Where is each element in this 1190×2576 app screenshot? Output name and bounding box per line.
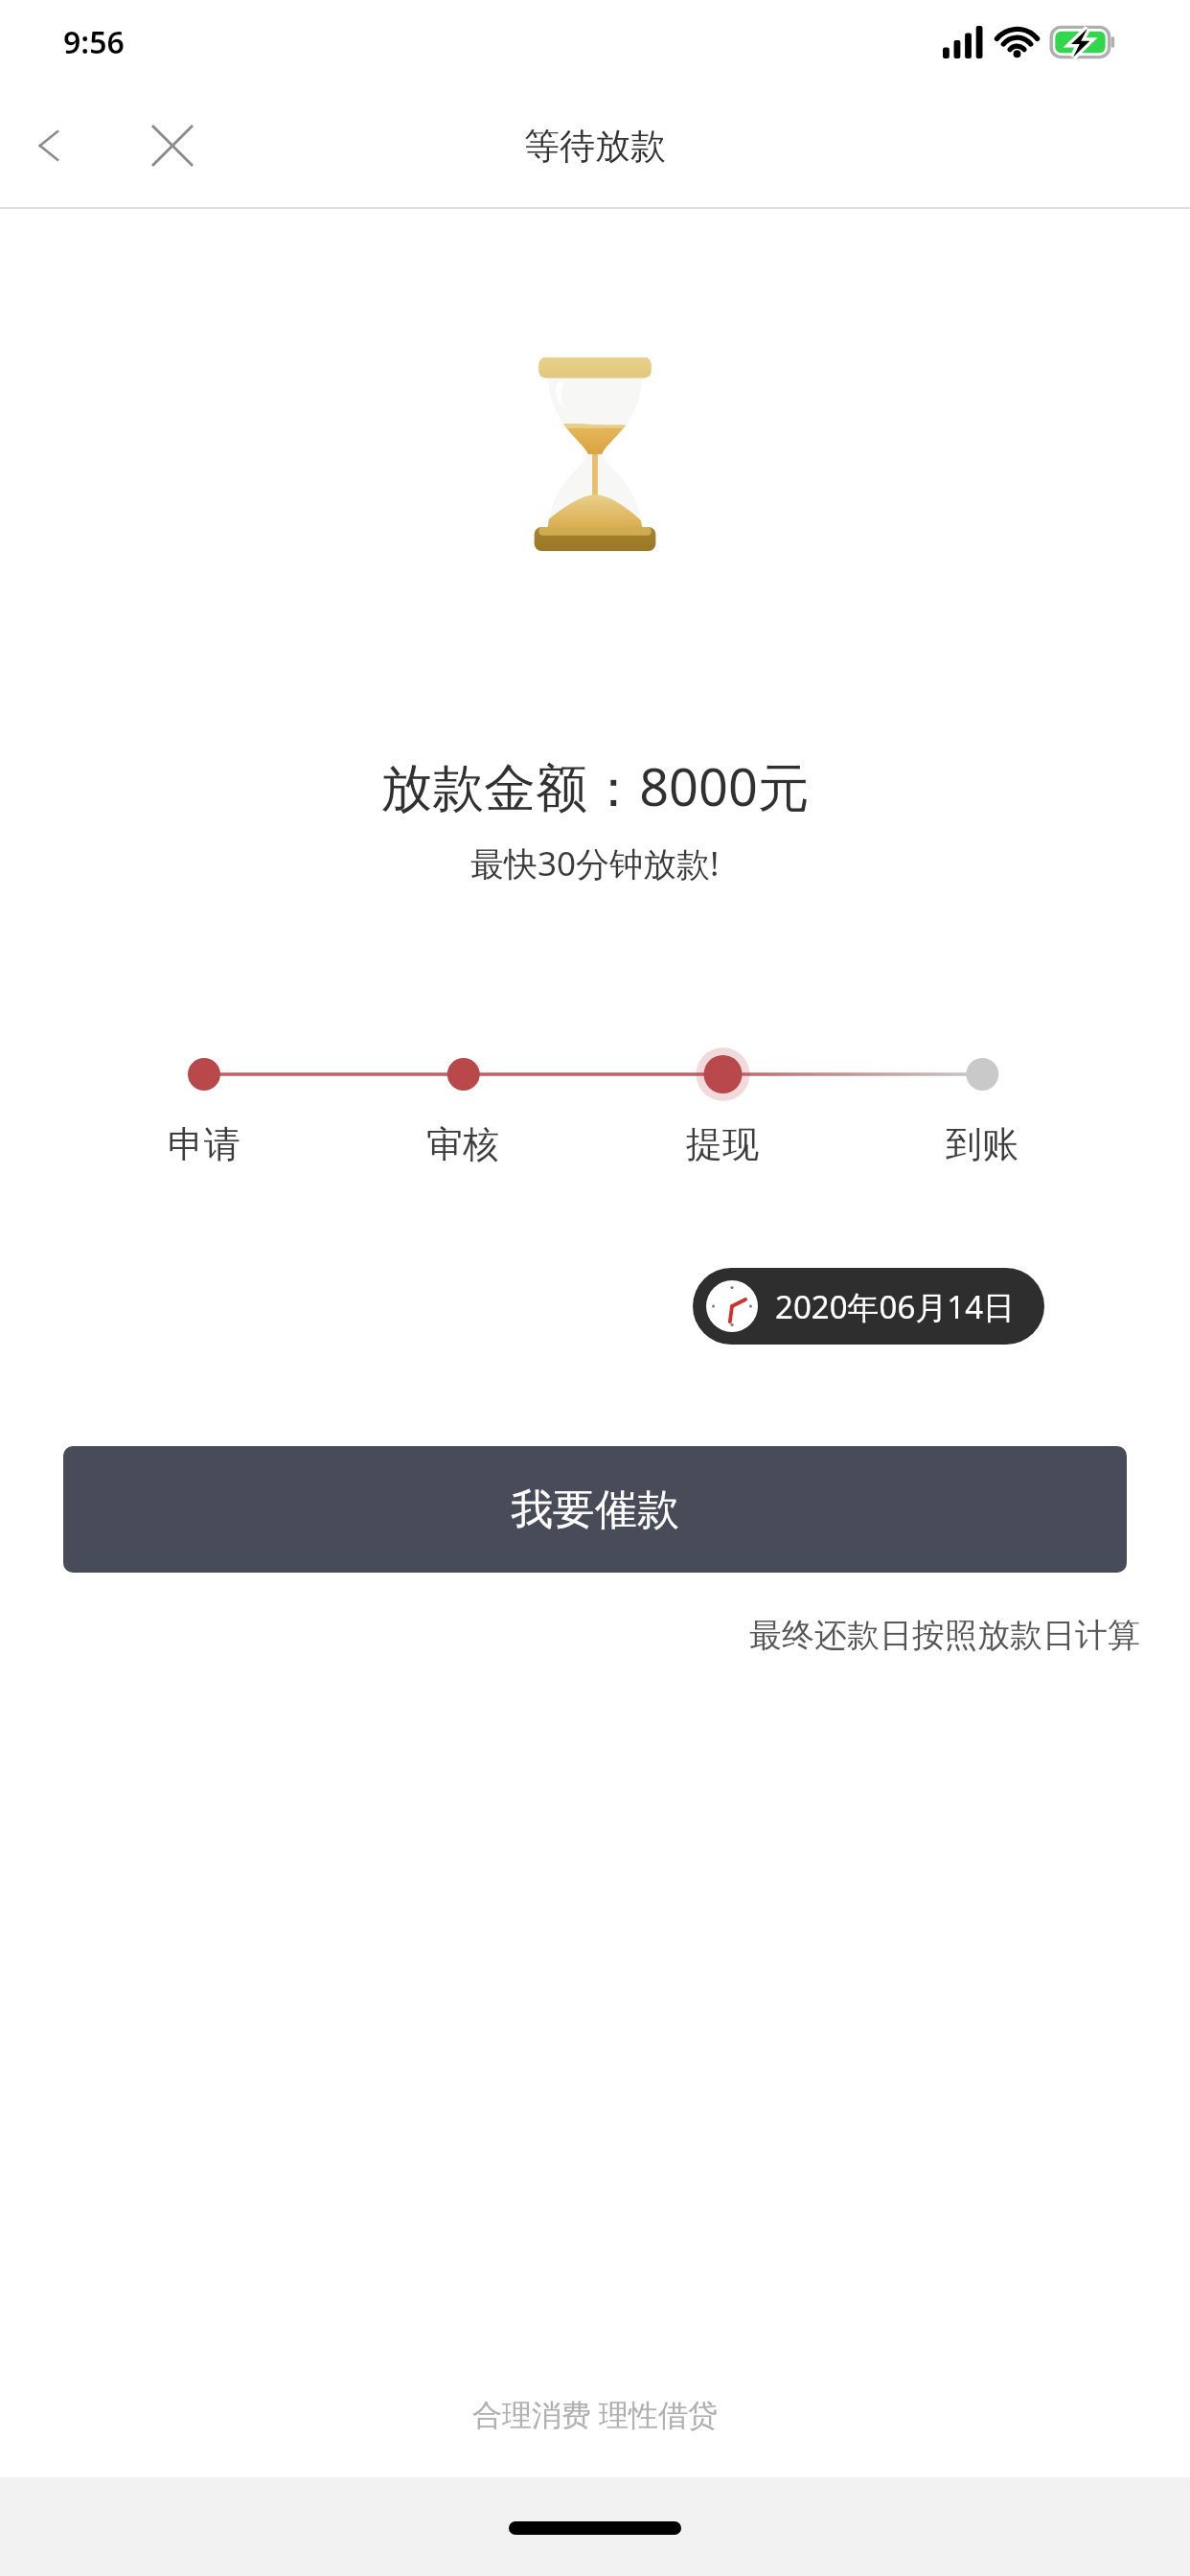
button[interactable]: 我要催款 — [63, 1446, 1127, 1573]
button[interactable]: Close — [142, 115, 203, 176]
staticText: 等待放款 — [524, 124, 666, 169]
staticText: 最终还款日按照放款日计算 — [749, 1615, 1140, 1656]
staticText: 到账 — [946, 1121, 1018, 1167]
staticText: 审核 — [426, 1121, 499, 1167]
button[interactable]: 审核 — [417, 1117, 509, 1171]
button[interactable]: 申请 — [158, 1117, 250, 1171]
staticText: 放款金额：8000元 — [380, 750, 810, 821]
button[interactable]: 到账 — [936, 1117, 1028, 1171]
staticText: 2020年06月14日 — [775, 1285, 1016, 1328]
staticText: 合理消费 理性借贷 — [472, 2394, 719, 2434]
staticText: 提现 — [686, 1121, 759, 1167]
staticText: 申请 — [168, 1121, 240, 1167]
button[interactable]: 2020年06月14日 — [693, 1268, 1044, 1345]
staticText: 9:56 — [63, 21, 125, 63]
button[interactable]: 提现 — [676, 1117, 768, 1171]
staticText: 最快30分钟放款! — [470, 840, 720, 886]
staticText: 我要催款 — [511, 1483, 679, 1536]
button[interactable]: Back — [19, 115, 80, 176]
